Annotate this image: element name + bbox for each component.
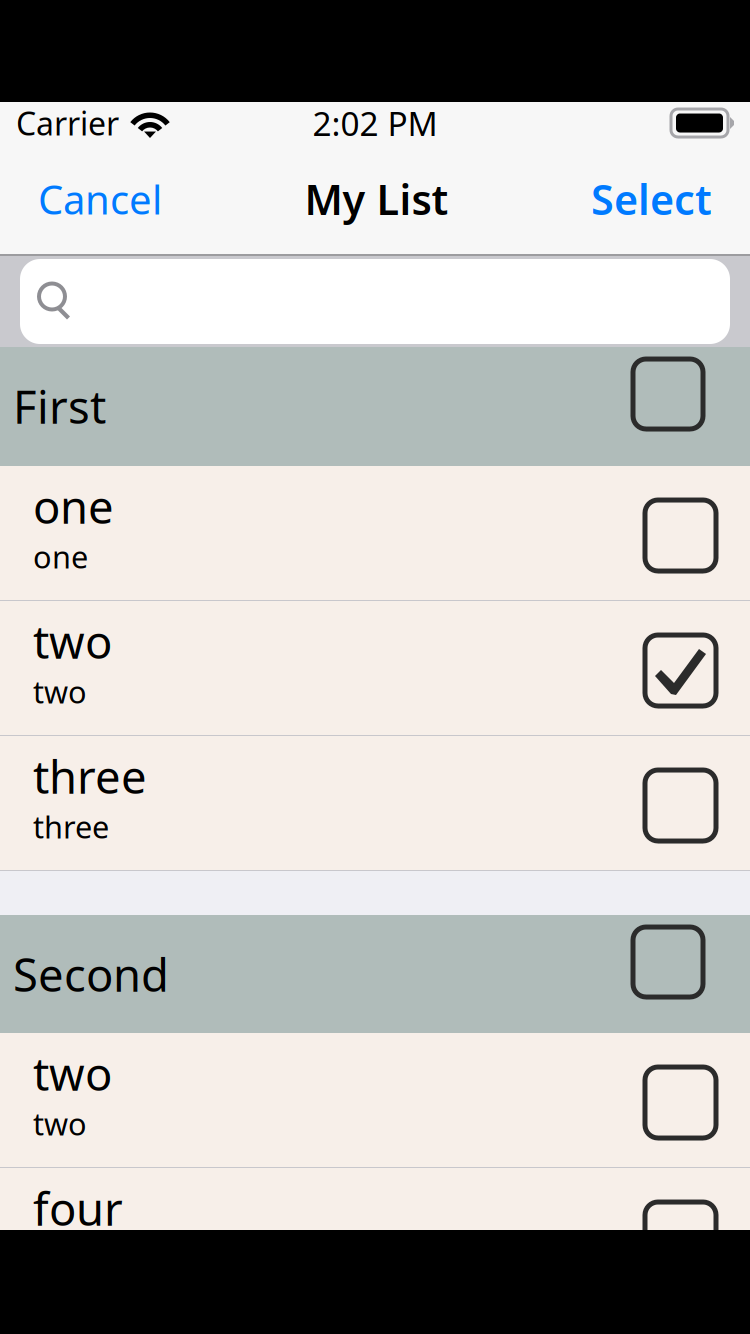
button[interactable]: three [0, 736, 750, 870]
staticText: four [33, 1178, 123, 1238]
button[interactable]: two [0, 601, 750, 735]
button[interactable]: Search [20, 259, 730, 344]
staticText: Second [13, 944, 169, 1004]
button[interactable]: Second [0, 915, 750, 1033]
staticText: Carrier [16, 102, 119, 144]
staticText: three [33, 746, 147, 806]
staticText: My List [304, 172, 448, 226]
button[interactable]: two [0, 1033, 750, 1167]
staticText: two [33, 671, 87, 712]
staticText: two [33, 1103, 87, 1144]
staticText: 2:02 PM [312, 101, 437, 145]
staticText: one [33, 536, 88, 577]
button[interactable]: Select [591, 172, 712, 226]
staticText: one [33, 476, 114, 536]
staticText: Select [591, 172, 712, 226]
button[interactable]: Cancel [38, 172, 162, 225]
staticText: three [33, 806, 109, 847]
button[interactable]: four [0, 1168, 750, 1302]
staticText: Cancel [38, 172, 162, 225]
staticText: two [33, 611, 112, 671]
staticText: two [33, 1043, 112, 1103]
staticText: First [13, 376, 106, 436]
button[interactable]: First [0, 347, 750, 466]
button[interactable]: one [0, 466, 750, 600]
